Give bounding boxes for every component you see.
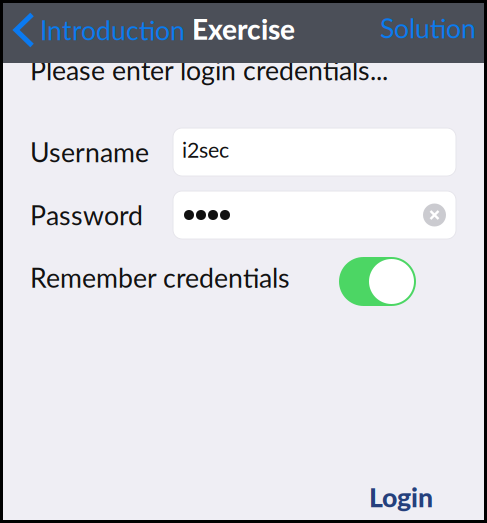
button[interactable]: Introduction bbox=[3, 3, 185, 63]
staticText: Username bbox=[30, 136, 149, 168]
staticText: Introduction bbox=[40, 14, 185, 46]
staticText: Please enter login credentials... bbox=[30, 54, 388, 86]
staticText: Login bbox=[369, 481, 433, 513]
button[interactable]: Solution bbox=[380, 3, 484, 63]
staticText: Password bbox=[30, 199, 143, 231]
staticText: Exercise bbox=[192, 12, 295, 46]
button[interactable]: Login bbox=[369, 481, 484, 520]
staticText: i2sec bbox=[182, 137, 229, 162]
button[interactable]: Remember credentials bbox=[339, 257, 416, 306]
staticText: Solution bbox=[380, 12, 476, 44]
staticText: Remember credentials bbox=[30, 261, 290, 293]
